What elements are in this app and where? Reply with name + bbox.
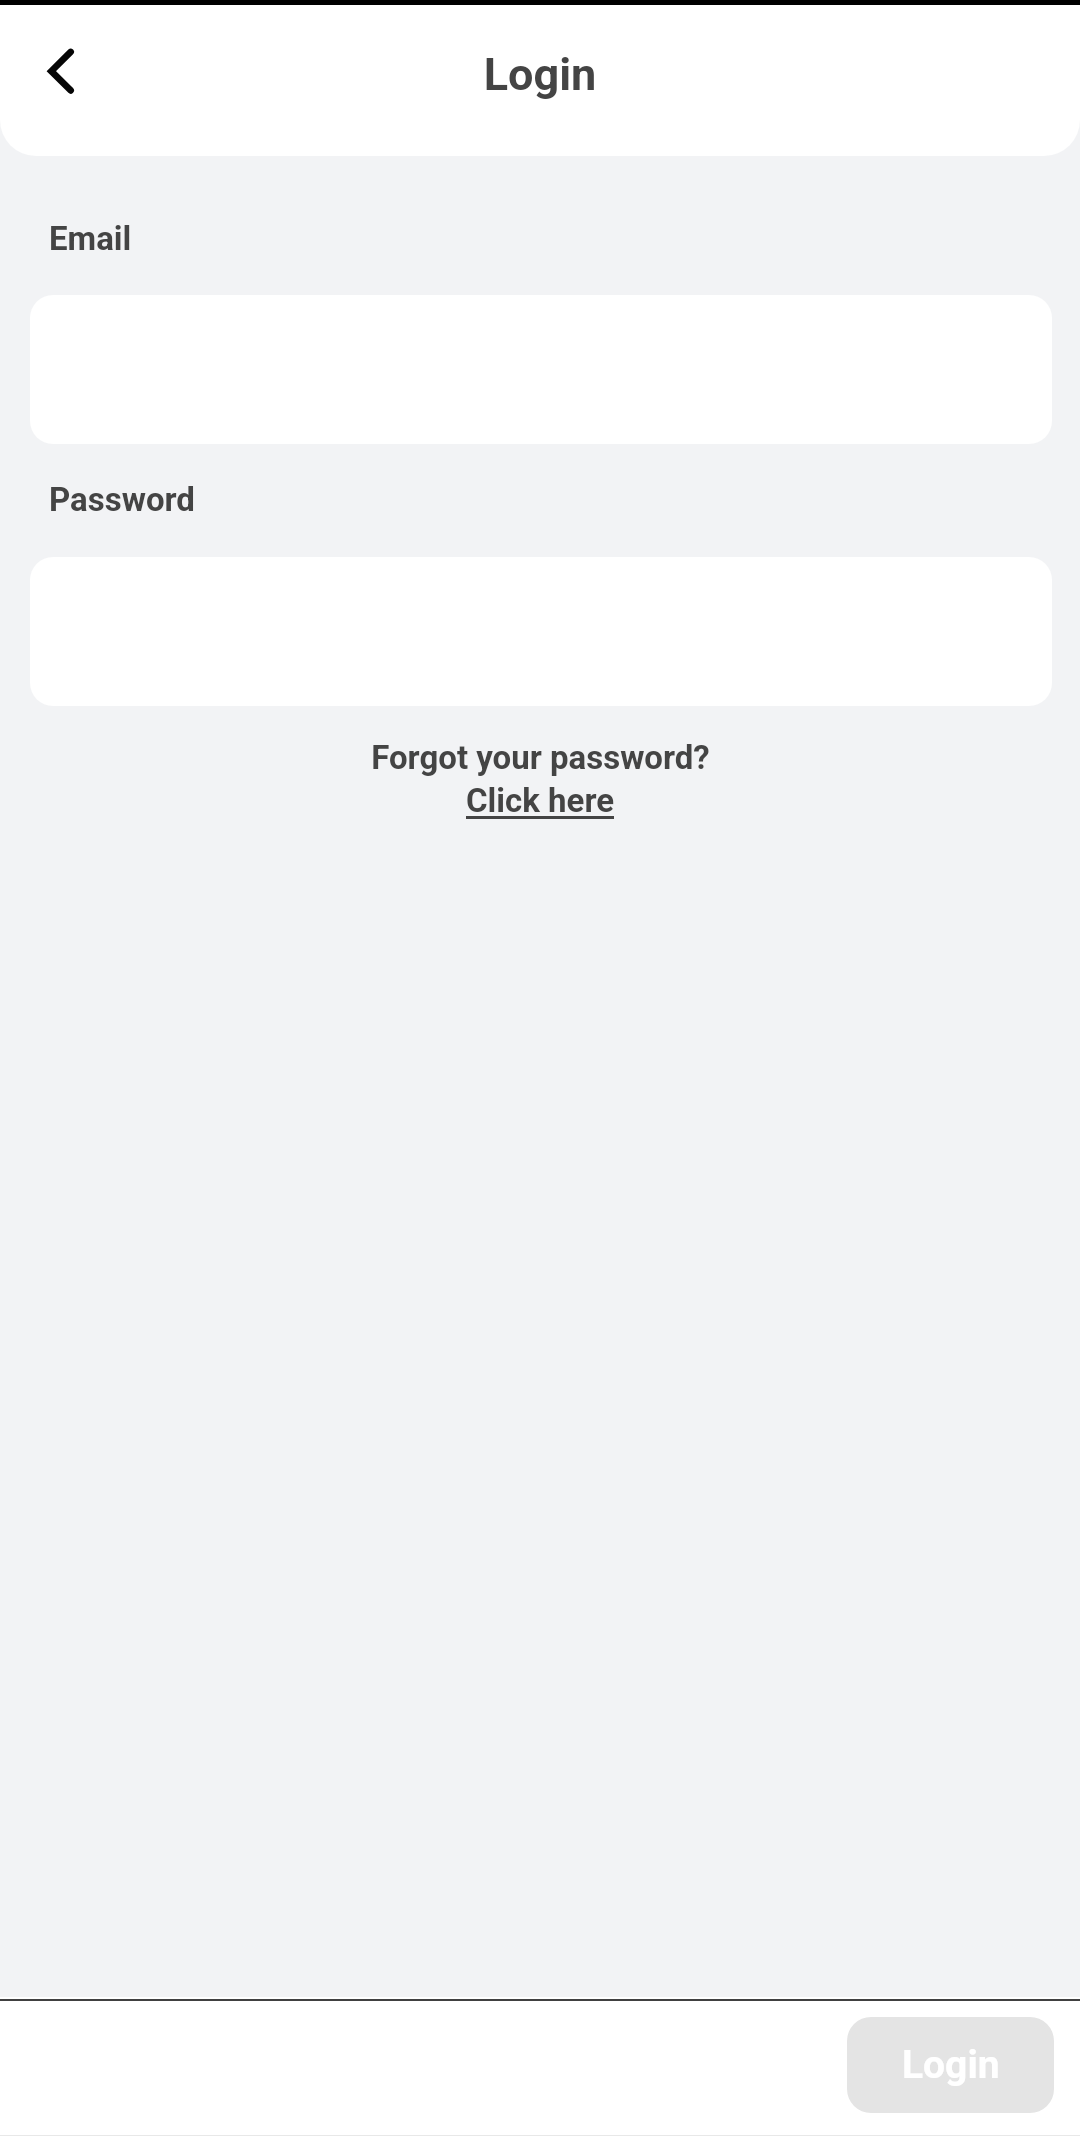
staticText: Forgot your password?: [371, 738, 710, 777]
staticText: Login: [902, 2042, 1000, 2088]
staticText: Click here: [466, 781, 614, 820]
button[interactable]: Login: [847, 2017, 1054, 2113]
staticText: Email: [49, 219, 132, 258]
button[interactable]: Back: [17, 27, 105, 115]
staticText: Password: [49, 480, 195, 519]
staticText: Login: [0, 48, 1080, 101]
button[interactable]: Click here: [466, 781, 614, 820]
